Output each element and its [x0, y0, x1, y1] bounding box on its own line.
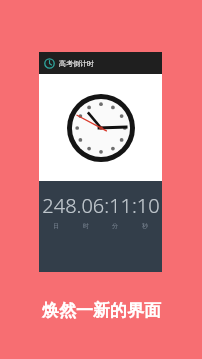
- staticText: 秒: [142, 222, 148, 230]
- other: App icon: [44, 58, 55, 69]
- staticText: 时: [83, 222, 89, 230]
- staticText: 焕然一新的界面: [42, 300, 161, 321]
- staticText: 分: [112, 222, 118, 230]
- button[interactable]: App icon: [39, 52, 162, 74]
- staticText: 248.06:11:10: [42, 192, 160, 219]
- button[interactable]: 248.06:11:10: [39, 181, 162, 272]
- button[interactable]: Analog clock: [67, 94, 135, 162]
- staticText: 日: [53, 222, 59, 230]
- staticText: 高考倒计时: [59, 59, 94, 68]
